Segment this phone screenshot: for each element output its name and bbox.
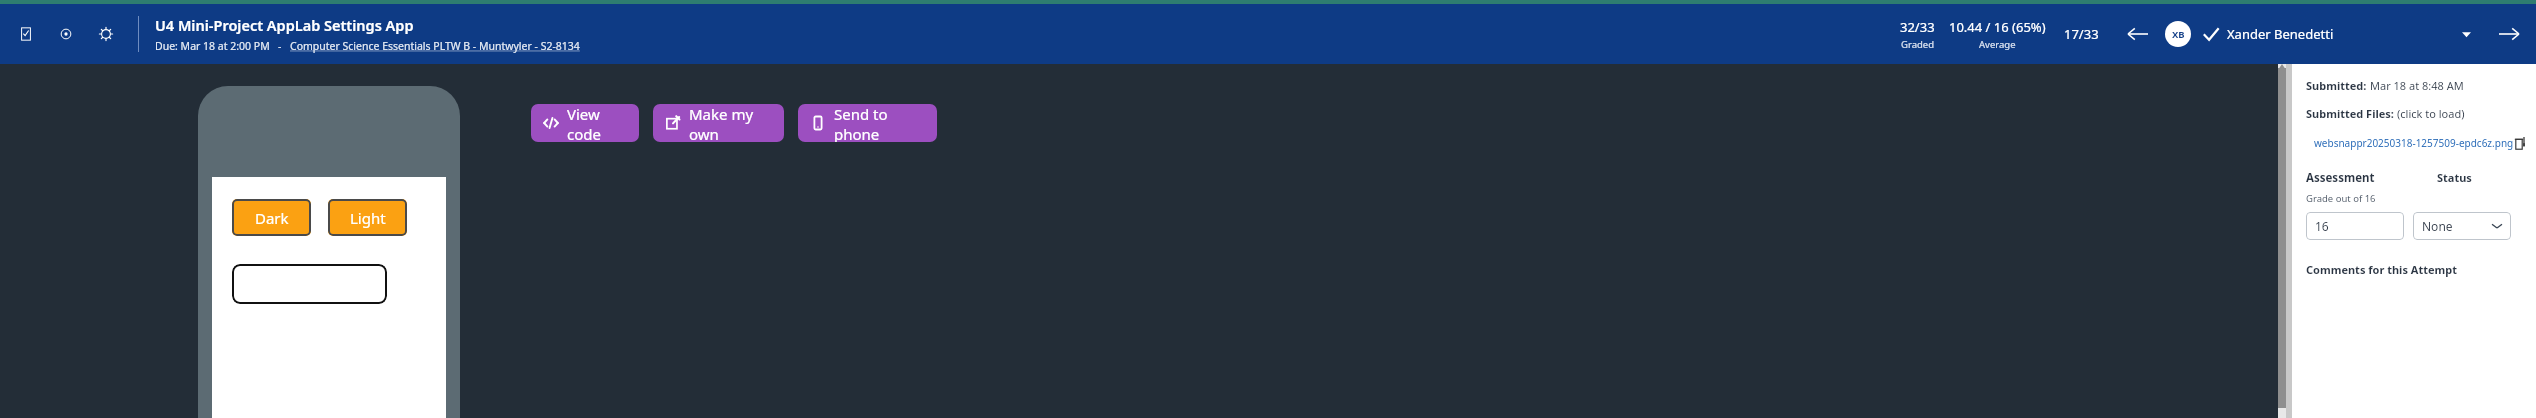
button[interactable]: Previous student — [2121, 17, 2155, 51]
button[interactable]: Next student — [2492, 17, 2526, 51]
button[interactable]: Settings — [86, 14, 126, 54]
staticText: 17/33 — [2064, 25, 2099, 43]
staticText: Make my own — [689, 104, 773, 142]
staticText: Light — [350, 208, 386, 228]
staticText: Submitted Files: — [2306, 106, 2397, 121]
button[interactable]: Light — [328, 199, 407, 236]
staticText: Status — [2437, 170, 2472, 185]
staticText: Average — [1979, 38, 2016, 51]
staticText: 16 — [2315, 218, 2329, 234]
staticText: Submitted: — [2306, 78, 2370, 93]
button[interactable]: Computer Science Essentials PLTW B - Mun… — [290, 39, 580, 53]
button[interactable] — [232, 264, 387, 304]
staticText: View code — [567, 104, 628, 142]
button[interactable]: View code — [531, 104, 639, 142]
button[interactable]: More — [2454, 22, 2478, 46]
staticText: Mar 18 at 8:48 AM — [2370, 78, 2464, 93]
staticText: 32/33 — [1900, 18, 1935, 36]
staticText: Due: Mar 18 at 2:00 PM - — [155, 39, 290, 53]
staticText: Dark — [255, 208, 289, 228]
staticText: 10.44 / 16 (65%) — [1949, 18, 2046, 36]
staticText: Grade out of 16 — [2306, 192, 2376, 205]
staticText: Xander Benedetti — [2227, 25, 2334, 43]
staticText: Send to phone — [834, 104, 926, 142]
button[interactable]: Delete file — [2514, 133, 2524, 153]
staticText: (click to load) — [2397, 106, 2465, 121]
staticText: XB — [2172, 28, 2185, 41]
button[interactable]: websnappr20250318-1257509-epdc6z.png — [2314, 136, 2514, 150]
button[interactable]: 16 — [2306, 212, 2404, 240]
staticText: U4 Mini-Project AppLab Settings App — [155, 15, 414, 35]
staticText: Comments for this Attempt — [2306, 262, 2457, 277]
staticText: None — [2422, 218, 2453, 234]
button[interactable]: Send to phone — [798, 104, 937, 142]
button[interactable]: Make my own — [653, 104, 784, 142]
button[interactable]: Rubric — [6, 14, 46, 54]
button[interactable]: XB — [2165, 21, 2191, 47]
staticText: Graded — [1901, 38, 1935, 51]
staticText: Assessment — [2306, 170, 2375, 186]
button[interactable]: None — [2413, 212, 2511, 240]
button[interactable]: Dark — [232, 199, 311, 236]
button[interactable]: Preview — [46, 14, 86, 54]
